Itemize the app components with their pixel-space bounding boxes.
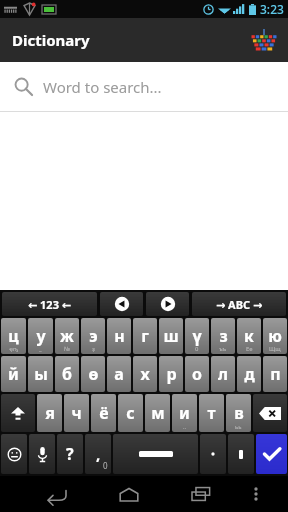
staticText: н bbox=[114, 325, 125, 347]
staticText: ү bbox=[192, 325, 202, 347]
button[interactable]: р bbox=[159, 356, 183, 392]
button[interactable]: о bbox=[185, 356, 209, 392]
button[interactable]: ← 123 ← bbox=[2, 292, 97, 316]
button[interactable]: Recents bbox=[184, 478, 218, 510]
button[interactable]: Period bbox=[200, 434, 226, 474]
staticText: х bbox=[140, 363, 150, 385]
button[interactable]: ? bbox=[57, 434, 83, 474]
button[interactable]: н bbox=[107, 318, 131, 354]
staticText: ҙ bbox=[92, 345, 95, 353]
button[interactable]: Right bbox=[146, 292, 189, 316]
button[interactable]: Shift bbox=[1, 394, 35, 432]
staticText: т bbox=[207, 402, 216, 424]
button[interactable]: у bbox=[28, 318, 53, 354]
button[interactable]: ц bbox=[1, 318, 26, 354]
button[interactable]: а bbox=[107, 356, 131, 392]
button[interactable]: п bbox=[263, 356, 287, 392]
staticText: ч bbox=[71, 402, 82, 424]
button[interactable]: More options bbox=[239, 478, 273, 510]
staticText: м bbox=[151, 402, 165, 424]
button[interactable]: й bbox=[1, 356, 26, 392]
button[interactable]: Left bbox=[100, 292, 143, 316]
staticText: 0 bbox=[195, 345, 199, 353]
staticText: а bbox=[114, 363, 124, 385]
staticText: я bbox=[45, 402, 55, 424]
staticText: у bbox=[36, 325, 46, 347]
staticText: 3:23 bbox=[260, 1, 284, 17]
button[interactable]: Voice input bbox=[29, 434, 55, 474]
button[interactable]: Backspace bbox=[253, 394, 287, 432]
button[interactable]: → ABC → bbox=[192, 292, 286, 316]
staticText: и bbox=[179, 402, 190, 424]
staticText: з bbox=[219, 325, 228, 347]
staticText: .. bbox=[183, 423, 187, 431]
staticText: л bbox=[218, 363, 228, 385]
button[interactable]: Word to search... bbox=[0, 62, 288, 111]
button[interactable]: з bbox=[211, 318, 235, 354]
staticText: в bbox=[234, 402, 244, 424]
staticText: ж bbox=[60, 325, 74, 347]
button[interactable]: д bbox=[237, 356, 261, 392]
staticText: Word to search... bbox=[43, 77, 162, 97]
staticText: э bbox=[89, 325, 98, 347]
staticText: с bbox=[126, 402, 135, 424]
staticText: ш bbox=[163, 325, 179, 347]
staticText: ьь bbox=[235, 423, 242, 431]
button[interactable]: в bbox=[226, 394, 251, 432]
staticText: , bbox=[96, 444, 101, 464]
button[interactable]: ө bbox=[81, 356, 105, 392]
staticText: → ABC → bbox=[216, 297, 263, 312]
button[interactable]: ш bbox=[159, 318, 183, 354]
staticText: ъъ bbox=[219, 345, 227, 353]
staticText: ц bbox=[8, 325, 19, 347]
button[interactable]: м bbox=[145, 394, 170, 432]
staticText: р bbox=[166, 363, 177, 385]
button[interactable]: ю bbox=[263, 318, 287, 354]
button[interactable]: и bbox=[172, 394, 197, 432]
staticText: ю bbox=[268, 325, 282, 347]
staticText: 0 bbox=[103, 460, 108, 471]
button[interactable]: л bbox=[211, 356, 235, 392]
button[interactable]: б bbox=[55, 356, 79, 392]
button[interactable]: Enter bbox=[256, 434, 287, 474]
staticText: Ее bbox=[246, 345, 253, 353]
button[interactable]: Back bbox=[40, 478, 74, 510]
button[interactable]: ы bbox=[28, 356, 53, 392]
staticText: № bbox=[64, 345, 71, 353]
staticText: _ bbox=[39, 345, 42, 353]
staticText: й bbox=[8, 363, 19, 385]
staticText: о bbox=[192, 363, 202, 385]
staticText: п bbox=[270, 363, 281, 385]
button[interactable]: Space bbox=[113, 434, 198, 474]
button[interactable]: к bbox=[237, 318, 261, 354]
staticText: ? bbox=[66, 443, 74, 465]
button[interactable]: ё bbox=[91, 394, 116, 432]
button[interactable]: с bbox=[118, 394, 143, 432]
button[interactable]: х bbox=[133, 356, 157, 392]
button[interactable]: г bbox=[133, 318, 157, 354]
button[interactable]: Emoji bbox=[1, 434, 27, 474]
button[interactable]: ж bbox=[55, 318, 79, 354]
staticText: Dictionary bbox=[12, 30, 90, 50]
button[interactable]: Apostrophe bbox=[228, 434, 254, 474]
button[interactable]: ү bbox=[185, 318, 209, 354]
button[interactable]: Home bbox=[112, 478, 146, 510]
staticText: г bbox=[141, 325, 149, 347]
button[interactable]: э bbox=[81, 318, 105, 354]
button[interactable]: App logo bbox=[248, 24, 280, 56]
staticText: б bbox=[62, 363, 72, 385]
button[interactable]: я bbox=[37, 394, 62, 432]
staticText: ө bbox=[88, 363, 99, 385]
button[interactable]: ч bbox=[64, 394, 89, 432]
staticText: ё bbox=[99, 402, 109, 424]
staticText: ← 123 ← bbox=[28, 297, 72, 312]
staticText: ы bbox=[34, 363, 48, 385]
staticText: ҿҧ bbox=[9, 345, 19, 353]
button[interactable]: т bbox=[199, 394, 224, 432]
staticText: к bbox=[244, 325, 254, 347]
staticText: Щщ bbox=[269, 345, 281, 353]
staticText: д bbox=[244, 363, 255, 385]
button[interactable]: Comma bbox=[85, 434, 111, 474]
